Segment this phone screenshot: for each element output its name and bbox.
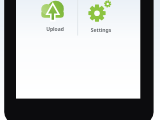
button[interactable]: Settings bbox=[86, 27, 116, 34]
button[interactable]: Upload bbox=[40, 26, 70, 33]
